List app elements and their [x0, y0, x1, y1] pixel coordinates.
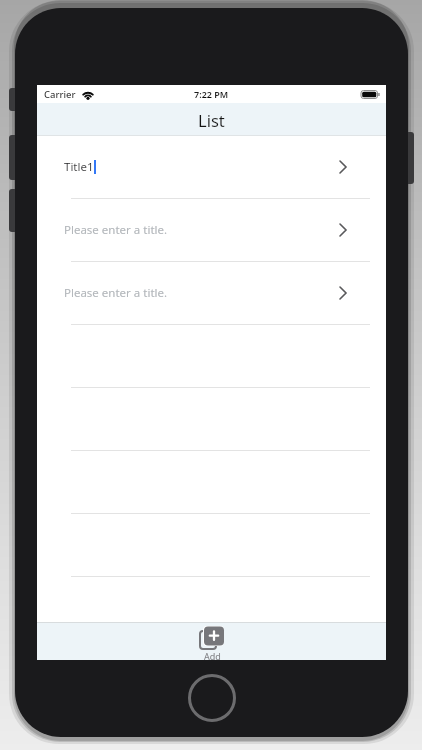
staticText: 7:22 PM — [194, 88, 229, 100]
button[interactable]: Add — [199, 626, 225, 662]
button[interactable]: Please enter a title. — [64, 199, 347, 261]
staticText: List — [198, 109, 225, 131]
staticText: Add — [204, 650, 221, 662]
button[interactable]: Title1 — [64, 136, 347, 198]
staticText: Please enter a title. — [64, 222, 168, 238]
staticText: Carrier — [44, 88, 76, 101]
button[interactable]: Please enter a title. — [64, 262, 347, 324]
staticText: Please enter a title. — [64, 285, 168, 301]
staticText: Title1 — [64, 159, 94, 175]
button[interactable] — [188, 674, 236, 722]
